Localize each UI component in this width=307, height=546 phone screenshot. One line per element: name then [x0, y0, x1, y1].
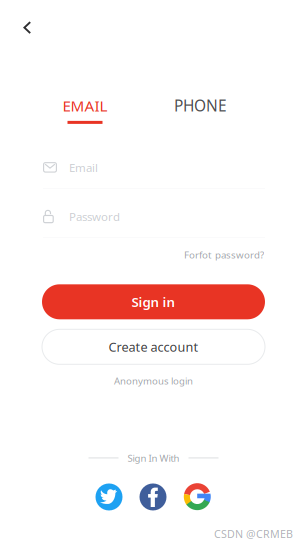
button[interactable]: Sign in with Google — [183, 483, 211, 510]
staticText: Anonymous login — [114, 374, 193, 387]
staticText: EMAIL — [62, 95, 107, 116]
button[interactable]: Create account — [42, 329, 265, 364]
button[interactable]: PHONE — [173, 95, 228, 124]
button[interactable]: EMAIL — [62, 95, 108, 124]
button[interactable]: Anonymous login — [114, 370, 193, 391]
staticText: PHONE — [174, 95, 227, 116]
staticText: Forfot password? — [184, 248, 264, 261]
staticText: Email — [69, 160, 98, 175]
button[interactable]: Forfot password? — [184, 245, 264, 264]
staticText: CSDN @CRMEB — [214, 526, 293, 541]
button[interactable]: Sign in with Facebook — [139, 483, 166, 510]
staticText: Sign In With — [127, 451, 179, 464]
staticText: Sign in — [131, 293, 175, 311]
button[interactable]: Sign in with Twitter — [95, 483, 122, 510]
staticText: Password — [69, 209, 120, 224]
staticText: Create account — [108, 338, 198, 355]
button[interactable]: Back — [0, 0, 46, 49]
button[interactable]: Sign in — [42, 284, 265, 319]
